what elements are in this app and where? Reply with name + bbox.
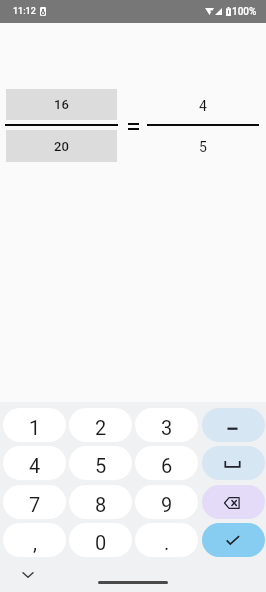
staticText: 100% [232, 6, 257, 18]
staticText: 5 [199, 139, 207, 155]
staticText: 5 [95, 454, 107, 477]
staticText: 3 [161, 416, 173, 439]
staticText: 1 [29, 416, 41, 439]
button[interactable]: Enter [202, 523, 265, 557]
staticText: . [164, 531, 170, 554]
button[interactable]: 9 [135, 485, 198, 519]
button[interactable]: Hide keyboard [18, 565, 38, 585]
staticText: 11:12 [13, 6, 36, 17]
staticText: 6 [161, 454, 173, 477]
staticText: 20 [54, 139, 69, 154]
button[interactable]: 0 [69, 523, 132, 557]
button[interactable]: 8 [69, 485, 132, 519]
staticText: 16 [54, 97, 69, 112]
button[interactable]: Backspace [202, 485, 265, 519]
button[interactable]: 16 [6, 89, 117, 120]
staticText: 0 [95, 531, 107, 554]
button[interactable]: 4 [3, 446, 66, 480]
button[interactable]: 6 [135, 446, 198, 480]
staticText: 4 [199, 98, 207, 114]
button[interactable]: . [135, 523, 198, 557]
button[interactable]: 1 [3, 408, 66, 442]
button[interactable]: 7 [3, 485, 66, 519]
staticText: 9 [161, 493, 173, 516]
staticText: 7 [29, 493, 41, 516]
staticText: 4 [29, 454, 41, 477]
button[interactable]: , [3, 523, 66, 557]
staticText: 2 [95, 416, 107, 439]
button[interactable]: Space [202, 446, 265, 480]
button[interactable]: 5 [69, 446, 132, 480]
staticText: , [33, 531, 37, 554]
button[interactable]: 3 [135, 408, 198, 442]
button[interactable]: 20 [6, 130, 117, 162]
button[interactable]: Minus [202, 408, 265, 442]
staticText: 8 [95, 493, 107, 516]
button[interactable]: 2 [69, 408, 132, 442]
